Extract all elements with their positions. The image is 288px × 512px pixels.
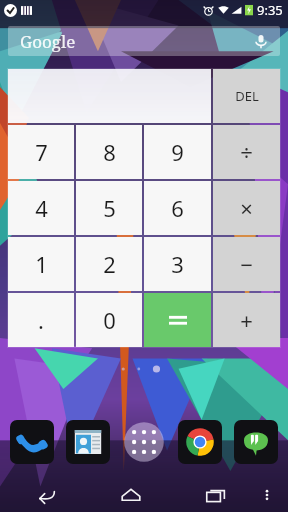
button[interactable]: 1 [8,237,74,291]
button[interactable]: More options [254,482,280,508]
staticText: ÷ [240,137,253,167]
button[interactable]: Contacts [66,420,110,464]
button[interactable]: − [213,237,280,291]
button[interactable]: Apps [122,420,166,464]
button[interactable]: Chrome [178,420,222,464]
staticText: × [240,193,253,223]
button[interactable]: Equals [144,293,211,347]
staticText: 2 [103,249,116,279]
button[interactable]: . [8,293,74,347]
button[interactable]: Phone [10,420,54,464]
button[interactable]: × [213,181,280,235]
staticText: 8 [103,137,116,167]
staticText: 3 [171,249,184,279]
staticText: . [38,305,44,335]
button[interactable]: ÷ [213,125,280,179]
button[interactable]: DEL [213,69,280,123]
button[interactable]: 2 [76,237,142,291]
button[interactable]: Voice search [252,32,270,50]
button[interactable]: 4 [8,181,74,235]
button[interactable]: 6 [144,181,211,235]
staticText: 0 [103,305,116,335]
button[interactable]: 5 [76,181,142,235]
staticText: Google [20,30,76,53]
button[interactable]: 9 [144,125,211,179]
button[interactable] [8,69,211,123]
button[interactable]: Google [8,26,280,56]
button[interactable]: Hangouts [234,420,278,464]
button[interactable]: + [213,293,280,347]
button[interactable]: Recents [199,478,233,512]
button[interactable]: Back [29,478,63,512]
staticText: 7 [35,137,48,167]
staticText: 9 [171,137,184,167]
staticText: 9:35 [257,1,283,19]
staticText: 6 [171,193,184,223]
staticText: DEL [235,87,259,105]
staticText: 4 [35,193,48,223]
staticText: 5 [103,193,116,223]
button[interactable]: 7 [8,125,74,179]
button[interactable]: Home [114,478,148,512]
button[interactable]: 3 [144,237,211,291]
staticText: 1 [35,249,48,279]
staticText: − [240,249,253,279]
button[interactable]: 0 [76,293,142,347]
button[interactable]: 8 [76,125,142,179]
staticText: + [240,305,253,335]
